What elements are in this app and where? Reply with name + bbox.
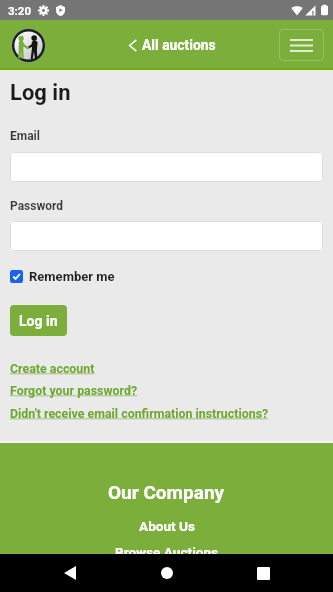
button[interactable]: Log in xyxy=(10,305,67,336)
staticText: Browse Auctions xyxy=(115,544,219,560)
button[interactable]: About Us xyxy=(139,518,195,534)
button[interactable]: Browse Auctions xyxy=(115,544,219,560)
button[interactable] xyxy=(10,152,323,182)
button[interactable]: Didn't receive email confirmation instru… xyxy=(10,406,269,421)
staticText: Forgot your password? xyxy=(10,383,138,398)
staticText: Remember me xyxy=(29,269,115,284)
staticText: All auctions xyxy=(142,37,216,53)
button[interactable]: Remember me xyxy=(10,269,115,284)
button[interactable]: Menu xyxy=(279,29,324,61)
staticText: Password xyxy=(10,199,64,213)
button[interactable]: Create account xyxy=(10,361,95,376)
staticText: Our Company xyxy=(108,481,225,503)
staticText: Log in xyxy=(19,313,58,329)
staticText: Didn't receive email confirmation instru… xyxy=(10,406,269,421)
button[interactable] xyxy=(10,221,323,251)
button[interactable]: Home xyxy=(145,554,189,592)
staticText: Log in xyxy=(10,80,71,106)
button[interactable]: Recents xyxy=(241,554,285,592)
button[interactable]: Back xyxy=(48,554,92,592)
staticText: Email xyxy=(10,129,40,143)
staticText: Create account xyxy=(10,361,95,376)
button[interactable]: Home xyxy=(12,29,45,62)
button[interactable]: All auctions xyxy=(129,37,216,53)
staticText: About Us xyxy=(139,518,195,534)
staticText: 3:20 xyxy=(8,4,32,17)
button[interactable]: Forgot your password? xyxy=(10,383,138,398)
